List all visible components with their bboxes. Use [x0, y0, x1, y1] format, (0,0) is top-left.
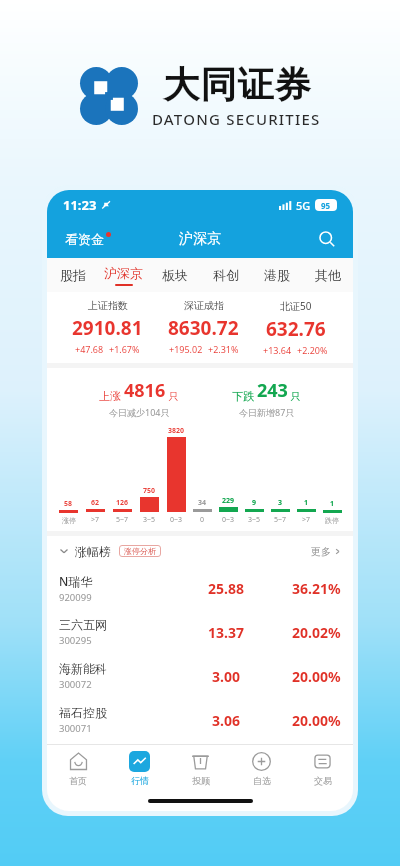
staticText: 3~5 [248, 515, 261, 525]
staticText: 投顾 [192, 775, 210, 786]
staticText: 0 [200, 515, 205, 525]
staticText: 300071 [59, 722, 92, 735]
button[interactable]: 其他 [302, 258, 353, 292]
staticText: 看资金 [65, 231, 104, 247]
button[interactable]: 看资金 [61, 227, 115, 251]
button[interactable]: N瑞华 [47, 566, 353, 610]
staticText: 3 [278, 498, 283, 508]
staticText: 11:23 [63, 196, 97, 214]
staticText: +13.64 [263, 344, 292, 356]
staticText: 沪深京 [104, 265, 143, 281]
staticText: 海新能科 [59, 661, 107, 676]
staticText: 36.21% [292, 579, 341, 598]
staticText: 1 [330, 499, 335, 509]
staticText: 涨停 [62, 516, 76, 525]
staticText: +195.02 [169, 343, 203, 355]
staticText: +2.20% [297, 344, 328, 356]
button[interactable]: 板块 [149, 258, 200, 292]
staticText: 3~5 [143, 515, 156, 525]
button[interactable]: Search [315, 227, 339, 251]
staticText: 板块 [162, 267, 188, 283]
staticText: 300072 [59, 678, 92, 691]
staticText: >7 [302, 515, 311, 525]
staticText: 13.37 [208, 623, 244, 642]
staticText: 5~7 [116, 515, 129, 525]
button[interactable]: 三六五网 [47, 610, 353, 654]
staticText: 3.06 [212, 711, 240, 730]
staticText: 深证成指 [184, 299, 224, 312]
staticText: 交易 [314, 775, 332, 786]
staticText: 243 [257, 378, 288, 403]
button[interactable]: 海新能科 [47, 654, 353, 698]
button[interactable]: 更多 [311, 545, 341, 558]
staticText: 0~3 [170, 515, 183, 525]
staticText: 5~7 [274, 515, 287, 525]
button[interactable]: 港股 [251, 258, 302, 292]
staticText: N瑞华 [59, 573, 93, 589]
staticText: 行情 [131, 775, 149, 786]
staticText: 涨停分析 [124, 546, 156, 556]
staticText: 大同证券 [163, 62, 311, 107]
staticText: 3820 [168, 426, 185, 436]
staticText: 港股 [264, 267, 290, 283]
staticText: +2.31% [208, 343, 239, 355]
staticText: 8630.72 [168, 315, 239, 341]
staticText: 20.00% [292, 667, 341, 686]
staticText: 20.02% [292, 623, 341, 642]
button[interactable]: 上证指数 [72, 299, 143, 355]
staticText: 9 [252, 498, 257, 508]
staticText: 其他 [315, 267, 341, 283]
button[interactable]: 福石控股 [47, 698, 353, 742]
staticText: DATONG SECURITIES [152, 109, 321, 129]
staticText: 自选 [253, 775, 271, 786]
staticText: 只 [288, 389, 301, 403]
staticText: 750 [143, 486, 156, 496]
staticText: 上证指数 [88, 299, 128, 312]
staticText: 3.00 [212, 667, 240, 686]
staticText: 920099 [59, 591, 92, 604]
button[interactable]: 自选 [231, 745, 292, 791]
button[interactable]: 北证50 [263, 299, 328, 356]
staticText: 北证50 [280, 299, 312, 313]
button[interactable]: 交易 [292, 745, 353, 791]
staticText: 三六五网 [59, 617, 107, 632]
button[interactable]: 深证成指 [168, 299, 239, 355]
staticText: +1.67% [109, 343, 140, 355]
staticText: 300295 [59, 634, 92, 647]
staticText: 股指 [60, 267, 86, 283]
button[interactable]: 科创 [200, 258, 251, 292]
staticText: 25.88 [208, 579, 244, 598]
staticText: +47.68 [75, 343, 104, 355]
button[interactable]: 涨停分析 [119, 545, 161, 557]
staticText: 跌停 [325, 516, 339, 525]
staticText: 福石控股 [59, 705, 107, 720]
button[interactable]: 行情 [109, 745, 170, 791]
staticText: 更多 [311, 545, 331, 558]
button[interactable]: 股指 [47, 258, 98, 292]
staticText: 0~3 [222, 515, 235, 525]
staticText: 5G [296, 198, 311, 213]
staticText: 4816 [124, 378, 166, 403]
staticText: 1 [304, 498, 309, 508]
staticText: 涨幅榜 [75, 544, 111, 559]
staticText: >7 [91, 515, 100, 525]
staticText: 2910.81 [72, 315, 143, 341]
staticText: 只 [166, 389, 179, 403]
staticText: 34 [198, 498, 207, 508]
button[interactable]: 沪深京 [98, 258, 149, 292]
button[interactable]: 首页 [47, 745, 109, 791]
staticText: 58 [64, 499, 73, 509]
staticText: 62 [91, 498, 100, 508]
staticText: 今日减少104只 [109, 406, 170, 418]
staticText: 20.00% [292, 711, 341, 730]
staticText: 95 [321, 200, 331, 211]
staticText: 下跌 [232, 388, 257, 403]
button[interactable]: 投顾 [170, 745, 231, 791]
staticText: 首页 [69, 775, 87, 786]
staticText: 632.76 [266, 316, 326, 342]
staticText: 今日新增87只 [239, 406, 295, 418]
